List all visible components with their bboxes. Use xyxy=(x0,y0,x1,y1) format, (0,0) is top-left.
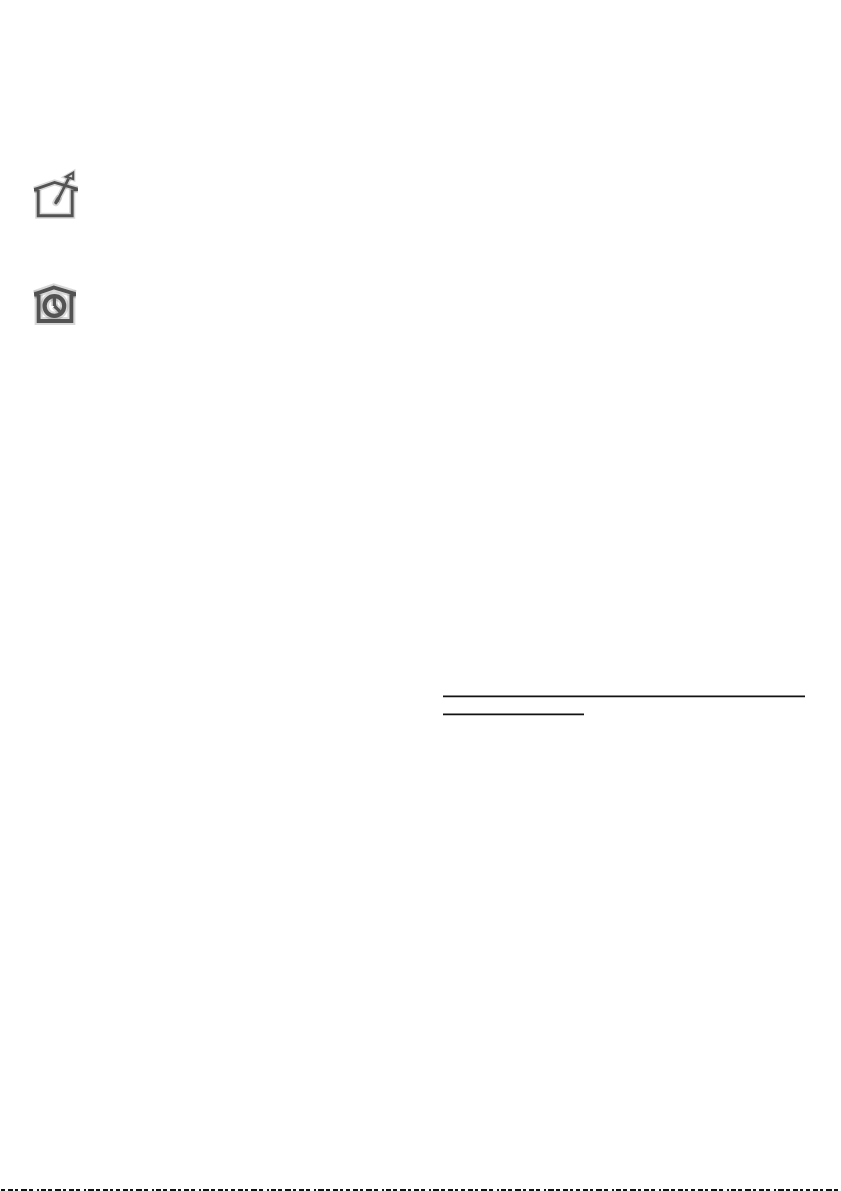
button[interactable]: Footer links xyxy=(0,1189,841,1191)
button[interactable]: Design your home xyxy=(32,170,80,220)
button[interactable]: Recently viewed homes xyxy=(32,284,78,324)
button[interactable]: Primary link xyxy=(443,678,805,700)
button[interactable]: Secondary link xyxy=(443,700,584,718)
